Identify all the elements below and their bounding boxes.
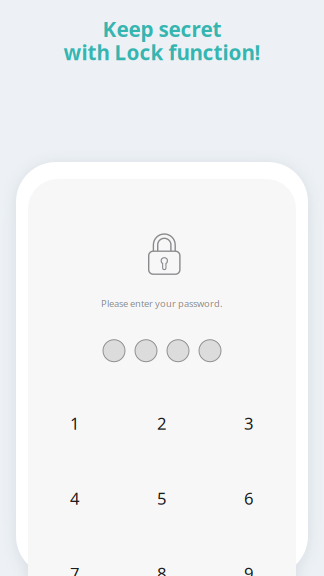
button[interactable]: 5 (118, 461, 205, 536)
staticText: 9 (244, 562, 254, 576)
staticText: 2 (157, 412, 167, 435)
button[interactable]: 4 (31, 461, 118, 536)
button[interactable]: 6 (205, 461, 292, 536)
staticText: 4 (70, 487, 80, 510)
button[interactable]: 9 (205, 536, 292, 576)
staticText: 3 (244, 412, 254, 435)
staticText: 1 (70, 412, 80, 435)
staticText: 5 (157, 487, 167, 510)
button[interactable]: 7 (31, 536, 118, 576)
staticText: 6 (244, 487, 254, 510)
staticText: 7 (70, 562, 80, 576)
staticText: Please enter your password. (101, 297, 223, 310)
staticText: with Lock function! (63, 38, 260, 66)
button[interactable]: 1 (31, 386, 118, 461)
button[interactable]: 3 (205, 386, 292, 461)
staticText: Keep secret (102, 15, 221, 43)
button[interactable]: 8 (118, 536, 205, 576)
staticText: 8 (157, 562, 167, 576)
button[interactable]: 2 (118, 386, 205, 461)
